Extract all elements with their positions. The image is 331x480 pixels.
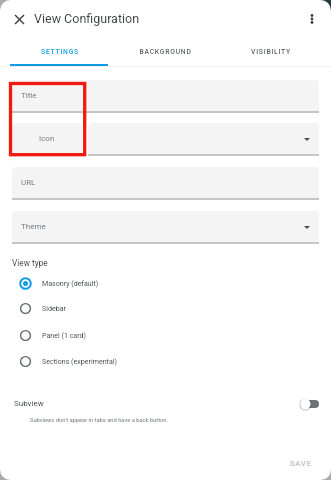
staticText: Title	[21, 91, 37, 100]
staticText: Masonry (default)	[42, 279, 99, 287]
button[interactable]: Masonry (default)	[12, 270, 319, 296]
staticText: Subviews don't appear in tabs and have a…	[30, 417, 168, 424]
button[interactable]: Sections (experimental)	[12, 348, 319, 374]
button[interactable]: SAVE	[286, 456, 316, 471]
button[interactable]: BACKGROUND	[112, 38, 218, 67]
staticText: BACKGROUND	[139, 48, 192, 56]
button[interactable]: Title	[12, 80, 319, 111]
button[interactable]: Theme	[12, 211, 319, 242]
staticText: View type	[12, 258, 48, 268]
button[interactable]: Icon	[12, 123, 82, 154]
button[interactable]: Subview	[12, 393, 319, 414]
staticText: Panel (1 card)	[42, 331, 87, 339]
staticText: SETTINGS	[41, 48, 79, 56]
staticText: View Configuration	[34, 11, 140, 26]
staticText: SAVE	[290, 459, 312, 468]
button[interactable]: SETTINGS	[7, 38, 112, 67]
staticText: Sections (experimental)	[42, 357, 117, 365]
staticText: VISIBILITY	[251, 48, 291, 56]
staticText: Subview	[14, 399, 44, 408]
button[interactable]: Sidebar	[12, 295, 319, 321]
button[interactable]: More options	[299, 6, 325, 32]
button[interactable]: VISIBILITY	[218, 38, 324, 67]
button[interactable]: URL	[12, 167, 319, 198]
button[interactable]: Panel (1 card)	[12, 322, 319, 348]
button[interactable]	[88, 123, 319, 154]
button[interactable]: Close	[6, 6, 32, 32]
staticText: Sidebar	[42, 304, 66, 312]
staticText: Icon	[39, 134, 55, 143]
staticText: URL	[21, 178, 36, 187]
staticText: Theme	[21, 222, 46, 231]
